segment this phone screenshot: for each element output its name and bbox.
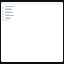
button[interactable]: Item icon: [1, 15, 63, 18]
button[interactable]: Menu: [1, 2, 63, 5]
button[interactable]: Item icon: [1, 12, 63, 15]
button[interactable]: Item icon: [1, 18, 63, 21]
button[interactable]: Item icon: [1, 9, 63, 12]
button[interactable]: Item icon: [1, 6, 63, 9]
